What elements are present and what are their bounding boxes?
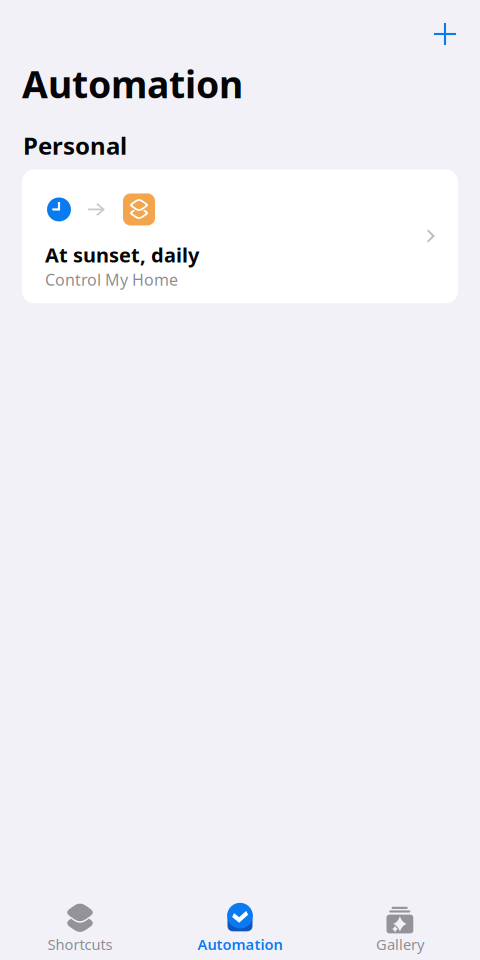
button[interactable]: Shortcuts	[0, 899, 160, 954]
button[interactable]: Gallery	[320, 899, 480, 954]
staticText: Shortcuts	[47, 934, 112, 954]
button[interactable]: New Automation	[425, 14, 465, 54]
button[interactable]: At sunset, daily	[22, 169, 458, 303]
staticText: Control My Home	[45, 269, 178, 290]
staticText: Automation	[22, 59, 243, 109]
staticText: Gallery	[376, 934, 424, 954]
staticText: Personal	[23, 130, 127, 161]
button[interactable]: Automation	[160, 899, 320, 954]
staticText: Automation	[197, 934, 282, 954]
staticText: At sunset, daily	[45, 241, 199, 268]
